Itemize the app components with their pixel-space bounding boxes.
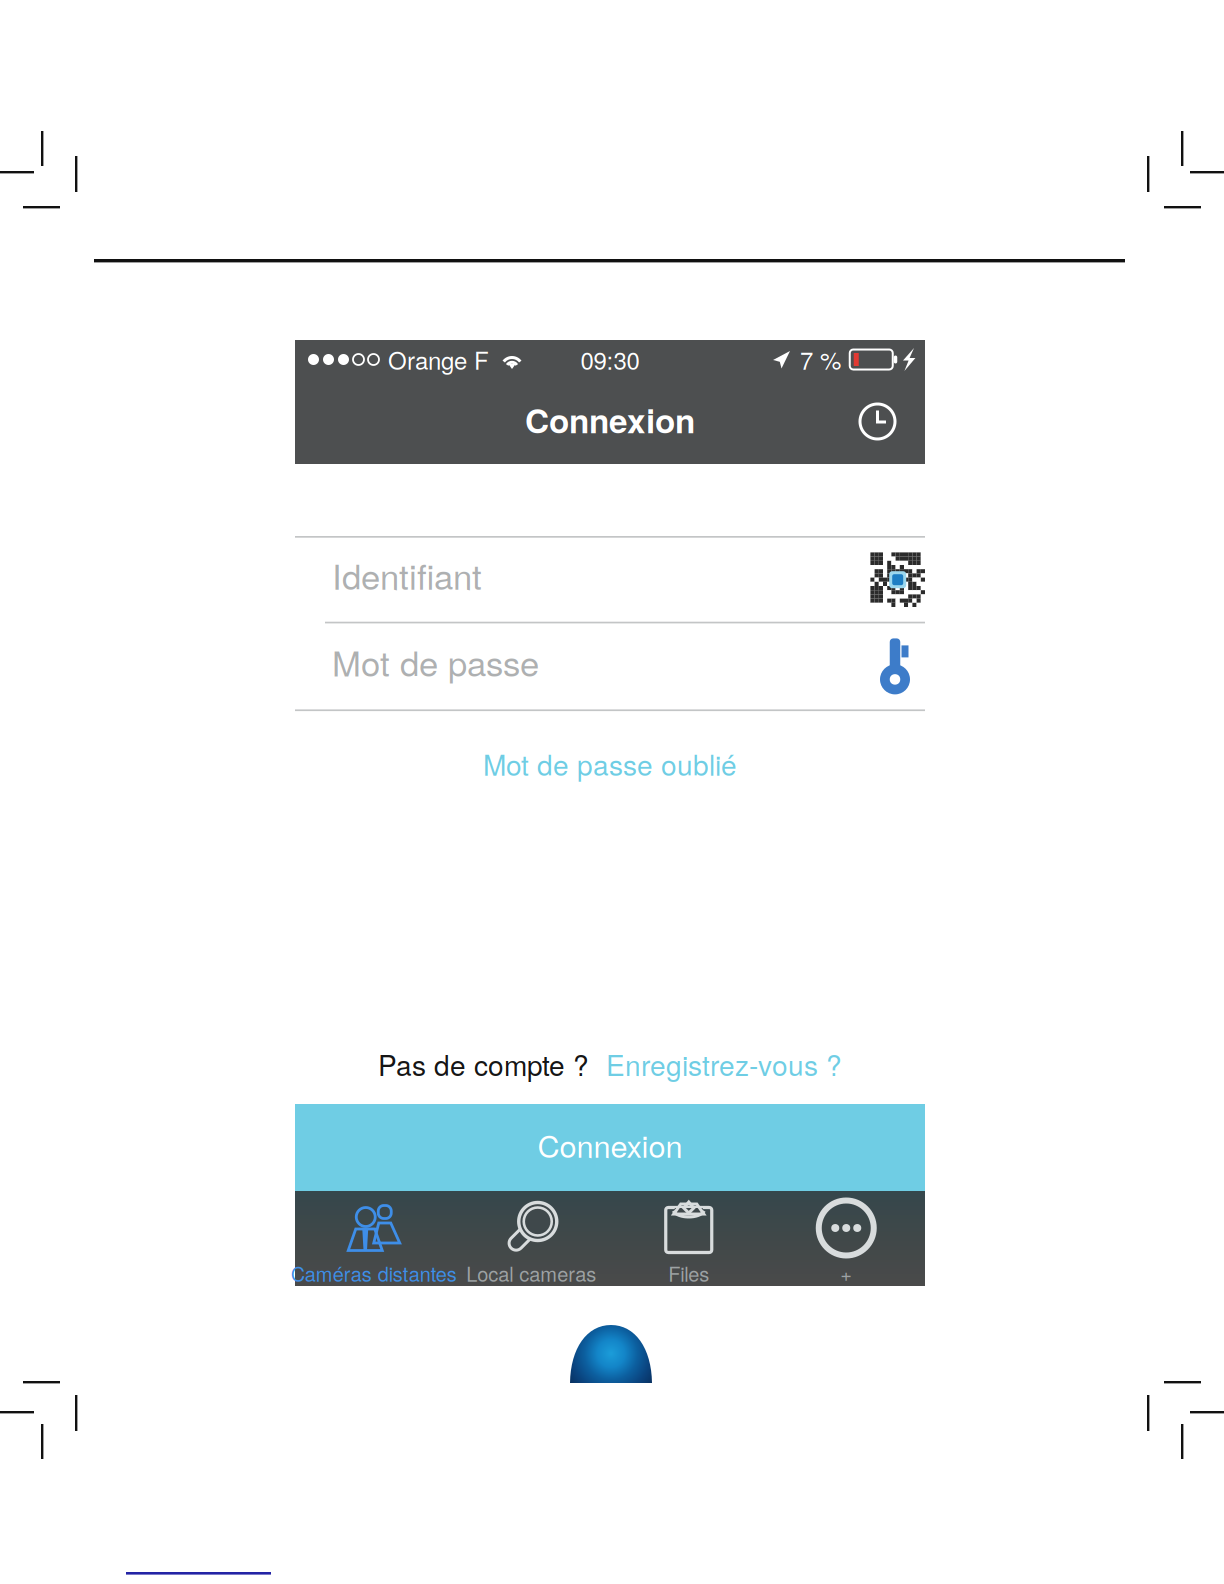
staticText: +	[840, 1259, 852, 1287]
button[interactable]: Connexion	[295, 1104, 925, 1191]
staticText: Connexion	[525, 396, 695, 443]
button[interactable]: Files	[610, 1191, 767, 1286]
button[interactable]: Caméras distantes	[295, 1191, 452, 1286]
staticText: Enregistrez-vous ?	[606, 1044, 842, 1084]
staticText: Connexion	[537, 1122, 682, 1166]
staticText: Mot de passe	[332, 637, 539, 686]
button[interactable]: +	[767, 1191, 925, 1286]
staticText: Mot de passe oublié	[483, 744, 737, 784]
button[interactable]: Enregistrez-vous ?	[606, 1044, 842, 1084]
button[interactable]: Mot de passe	[295, 623, 925, 709]
staticText: Files	[668, 1259, 709, 1287]
staticText: Pas de compte ?	[378, 1044, 589, 1084]
button[interactable]: Mot de passe oublié	[295, 711, 925, 824]
button[interactable]: Identifiant	[295, 538, 925, 622]
button[interactable]: History	[830, 379, 925, 464]
staticText: Caméras distantes	[291, 1259, 457, 1287]
staticText: Local cameras	[466, 1259, 596, 1287]
staticText: 09:30	[580, 342, 639, 377]
staticText: 7 %	[800, 342, 841, 377]
button[interactable]: Local cameras	[452, 1191, 610, 1286]
staticText: Orange F	[388, 342, 489, 377]
staticText: Identifiant	[332, 550, 482, 599]
